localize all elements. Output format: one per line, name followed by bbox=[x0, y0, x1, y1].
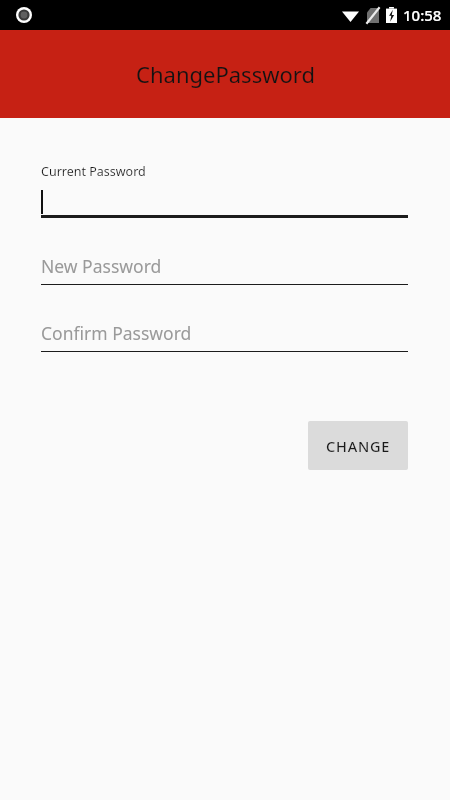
button[interactable]: New Password bbox=[41, 254, 408, 285]
staticText: New Password bbox=[41, 254, 162, 278]
other: Recording indicator bbox=[14, 5, 34, 25]
staticText: ChangePassword bbox=[136, 59, 315, 89]
staticText: CHANGE bbox=[326, 436, 391, 456]
staticText: 10:58 bbox=[403, 5, 442, 25]
button[interactable]: Current Password bbox=[41, 163, 408, 218]
staticText: Current Password bbox=[41, 163, 146, 180]
button[interactable]: Confirm Password bbox=[41, 321, 408, 352]
button[interactable]: CHANGE bbox=[308, 421, 408, 470]
staticText: Confirm Password bbox=[41, 321, 192, 345]
